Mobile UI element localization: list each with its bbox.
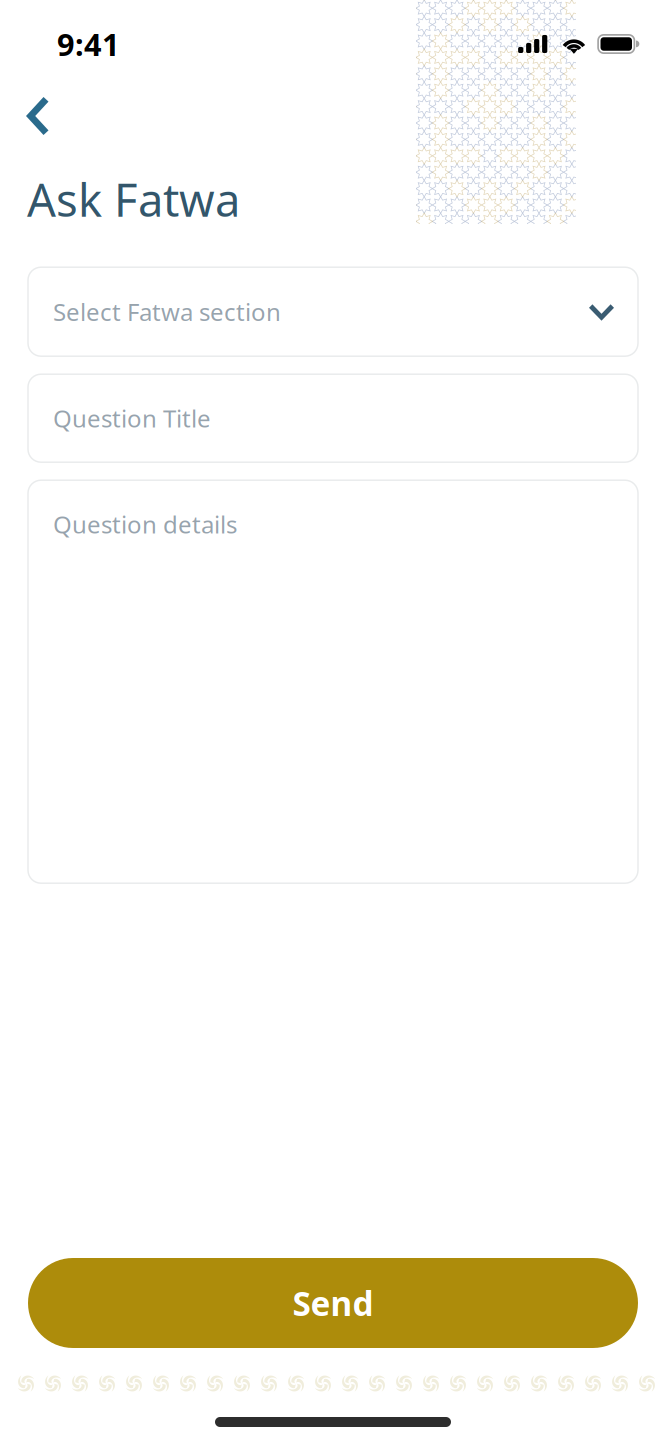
button[interactable]: Question Title: [28, 374, 638, 462]
staticText: Ask Fatwa: [27, 169, 240, 229]
staticText: Send: [292, 1281, 373, 1325]
button[interactable]: Back: [14, 89, 61, 143]
button[interactable]: Select Fatwa section: [28, 267, 638, 356]
button[interactable]: Question details: [28, 480, 638, 883]
button[interactable]: Send: [28, 1258, 638, 1348]
staticText: 9:41: [57, 24, 120, 64]
staticText: Question Title: [53, 402, 211, 434]
staticText: Question details: [53, 508, 237, 540]
staticText: Select Fatwa section: [53, 296, 281, 328]
